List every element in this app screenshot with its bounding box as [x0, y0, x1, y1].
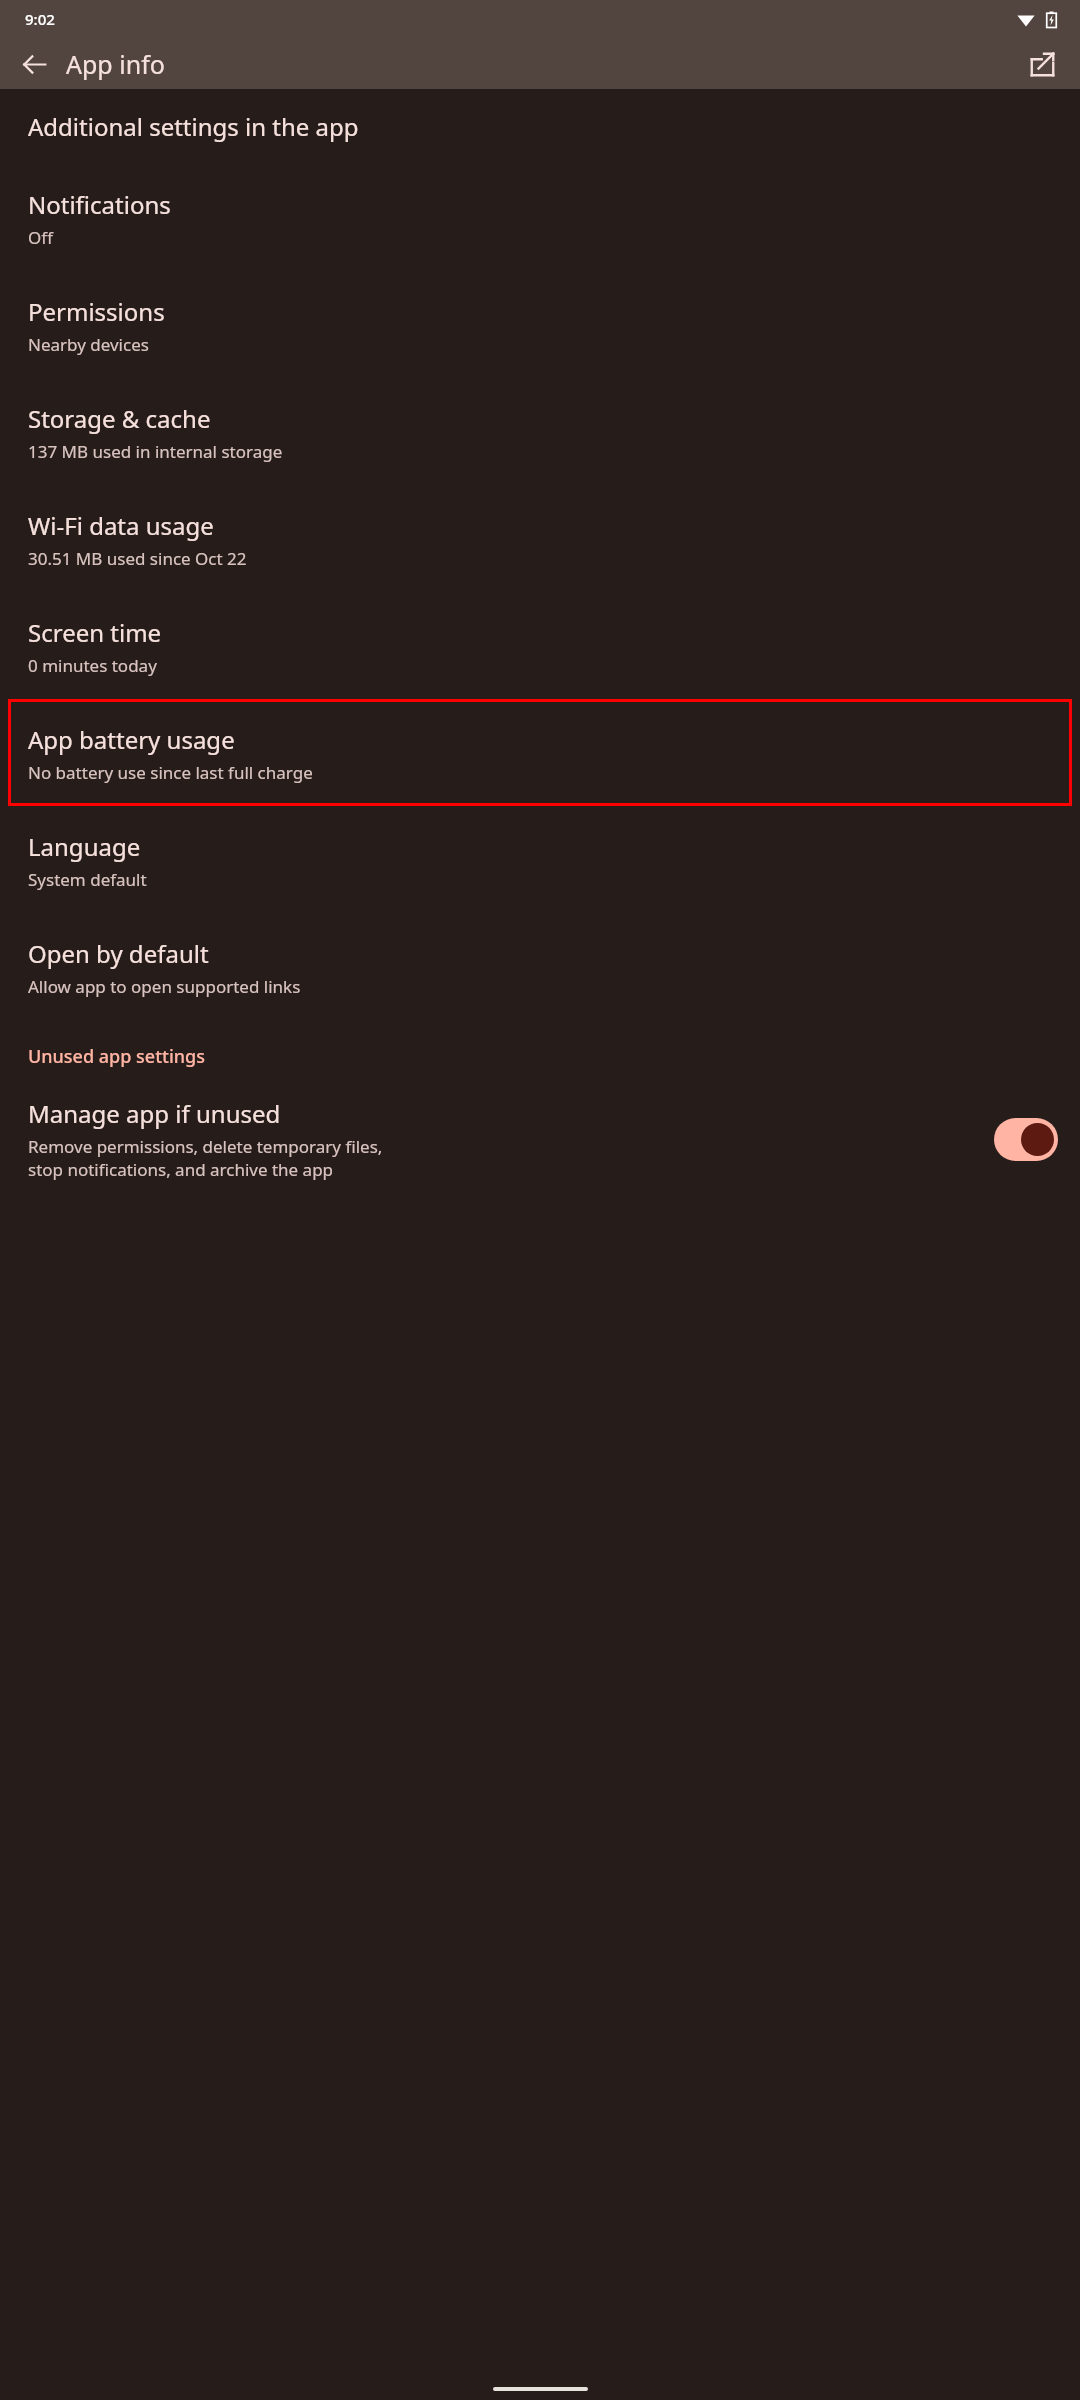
button[interactable]: Screen time: [0, 592, 1080, 699]
staticText: Off: [28, 226, 53, 249]
button[interactable]: Manage app if unused: [0, 1097, 1080, 1181]
staticText: Wi-Fi data usage: [28, 509, 214, 542]
staticText: 0 minutes today: [28, 654, 157, 677]
staticText: App info: [66, 47, 165, 81]
staticText: No battery use since last full charge: [28, 761, 313, 784]
button[interactable]: Storage & cache: [0, 378, 1080, 485]
button[interactable]: Additional settings in the app: [0, 89, 1080, 164]
button[interactable]: Back: [10, 40, 58, 88]
button[interactable]: Notifications: [0, 164, 1080, 271]
staticText: Nearby devices: [28, 333, 149, 356]
staticText: 137 MB used in internal storage: [28, 440, 283, 463]
staticText: Manage app if unused: [28, 1097, 281, 1130]
button[interactable]: Permissions: [0, 271, 1080, 378]
button[interactable]: Wi-Fi data usage: [0, 485, 1080, 592]
button[interactable]: Language: [0, 806, 1080, 913]
staticText: Language: [28, 830, 141, 863]
button[interactable]: Manage app if unused toggle: [994, 1118, 1058, 1161]
staticText: Notifications: [28, 188, 171, 221]
staticText: Allow app to open supported links: [28, 975, 301, 998]
staticText: Storage & cache: [28, 402, 211, 435]
staticText: Permissions: [28, 295, 165, 328]
staticText: Unused app settings: [28, 1044, 205, 1069]
button[interactable]: Open app store listing: [1018, 40, 1066, 88]
staticText: stop notifications, and archive the app: [28, 1158, 334, 1181]
staticText: App battery usage: [28, 723, 235, 756]
staticText: Open by default: [28, 937, 209, 970]
staticText: 30.51 MB used since Oct 22: [28, 547, 247, 570]
staticText: Additional settings in the app: [28, 110, 359, 143]
staticText: Screen time: [28, 616, 162, 649]
staticText: Remove permissions, delete temporary fil…: [28, 1135, 383, 1158]
staticText: System default: [28, 868, 147, 891]
button[interactable]: App battery usage: [8, 699, 1072, 806]
button[interactable]: Open by default: [0, 913, 1080, 1020]
staticText: 9:02: [25, 9, 55, 29]
